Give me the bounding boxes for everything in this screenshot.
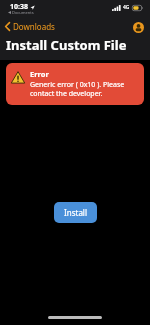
button[interactable]: Account: [131, 20, 145, 34]
button[interactable]: Error: [6, 63, 144, 105]
staticText: Downloads: [13, 21, 55, 32]
button[interactable]: Downloads: [0, 18, 61, 35]
button[interactable]: Install: [54, 202, 97, 223]
staticText: Generic error ( 0x10 ). Please contact t…: [30, 80, 136, 98]
staticText: Install: [64, 207, 87, 218]
staticText: 4G: [123, 4, 130, 11]
staticText: 10:38: [10, 2, 28, 12]
staticText: Install Custom File: [6, 36, 127, 54]
staticText: Documents: [12, 10, 34, 15]
staticText: Error: [30, 69, 49, 79]
